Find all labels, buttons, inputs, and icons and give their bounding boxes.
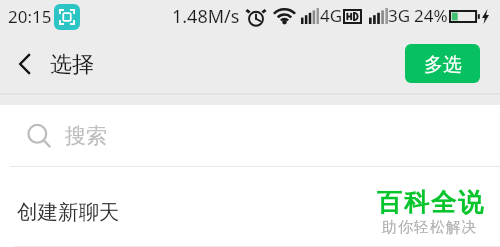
button[interactable]: Back (2, 34, 48, 93)
staticText: 1.48M/s (172, 4, 240, 29)
button[interactable]: 创建新聊天 (0, 167, 500, 246)
staticText: 24% (414, 4, 448, 27)
staticText: 百科全说 (376, 187, 484, 218)
staticText: 多选 (424, 53, 462, 77)
button[interactable]: 多选 (405, 44, 480, 83)
button[interactable]: 搜索 (0, 105, 500, 166)
staticText: 20:15 (8, 5, 52, 28)
staticText: 选择 (50, 51, 94, 79)
staticText: 创建新聊天 (17, 199, 120, 225)
staticText: 助你轻松解决 (382, 218, 478, 237)
staticText: 搜索 (65, 123, 107, 149)
staticText: 4G (320, 4, 343, 27)
staticText: 3G (388, 4, 411, 27)
